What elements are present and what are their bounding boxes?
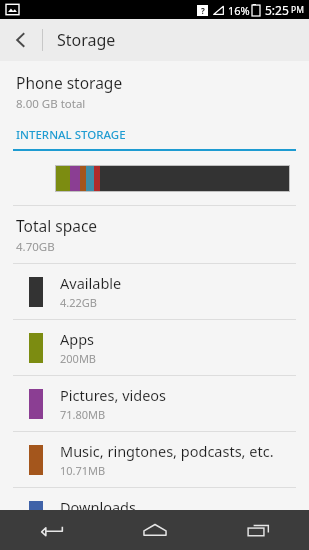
staticText: Total space — [16, 215, 98, 236]
staticText: Pictures, videos — [60, 385, 167, 405]
staticText: 1.00MB — [60, 519, 99, 534]
staticText: 4.70GB — [16, 239, 55, 255]
button[interactable]: Back — [0, 510, 103, 550]
staticText: Apps — [60, 329, 95, 349]
staticText: INTERNAL STORAGE — [16, 127, 126, 143]
staticText: Music, ringtones, podcasts, etc. — [60, 441, 274, 461]
staticText: 200MB — [60, 351, 97, 366]
button[interactable]: Downloads — [0, 488, 309, 543]
button[interactable]: Music, ringtones, podcasts, etc. — [0, 432, 309, 487]
staticText: 16% — [228, 3, 250, 18]
staticText: 5:25 — [265, 2, 289, 18]
button[interactable]: Pictures, videos — [0, 376, 309, 431]
staticText: PM — [291, 4, 304, 16]
staticText: ? — [201, 5, 205, 16]
staticText: Available — [60, 273, 122, 293]
staticText: 4.22GB — [60, 295, 97, 310]
staticText: 8.00 GB total — [16, 96, 86, 112]
button[interactable]: Apps — [0, 320, 309, 375]
button[interactable]: Back — [0, 19, 42, 61]
staticText: Storage — [57, 29, 116, 51]
button[interactable]: Home — [103, 510, 206, 550]
staticText: 10.71MB — [60, 463, 106, 478]
staticText: 71.80MB — [60, 407, 106, 422]
staticText: Downloads — [60, 497, 136, 517]
button[interactable]: Available — [0, 264, 309, 319]
staticText: Phone storage — [16, 72, 123, 93]
button[interactable]: INTERNAL STORAGE — [0, 127, 309, 151]
button[interactable]: Recent apps — [206, 510, 309, 550]
